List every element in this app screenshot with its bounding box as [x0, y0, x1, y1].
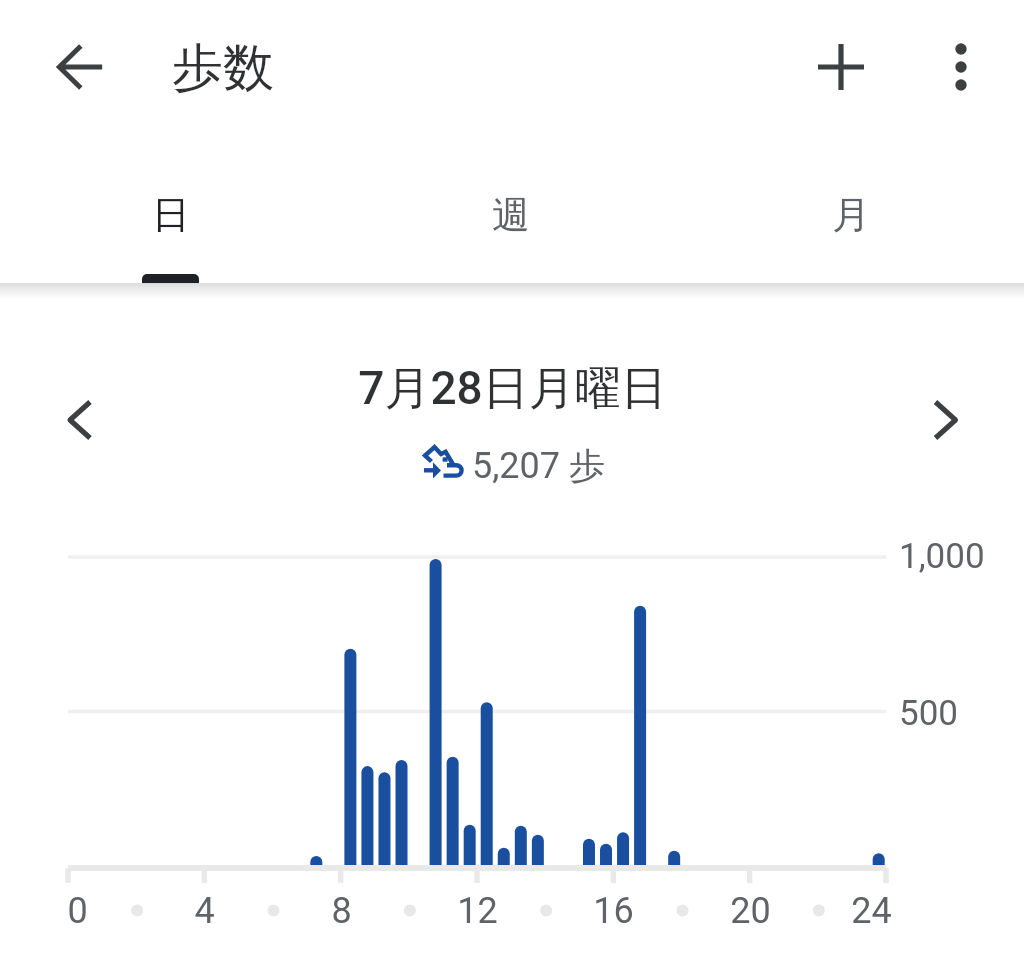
- staticText: 4: [194, 890, 215, 932]
- staticText: 5,207 歩: [472, 443, 605, 488]
- staticText: 24: [851, 890, 892, 932]
- button[interactable]: Back: [32, 19, 128, 115]
- button[interactable]: Add: [793, 19, 889, 115]
- staticText: 12: [457, 890, 498, 932]
- button[interactable]: Previous day: [30, 372, 126, 468]
- button[interactable]: 日: [0, 143, 341, 284]
- button[interactable]: 週: [341, 143, 682, 284]
- staticText: 月: [832, 191, 870, 239]
- staticText: 20: [730, 890, 771, 932]
- staticText: 16: [593, 890, 634, 932]
- button[interactable]: More options: [913, 19, 1009, 115]
- staticText: 500: [899, 693, 959, 734]
- staticText: 8: [331, 890, 352, 932]
- staticText: 1,000: [899, 536, 985, 577]
- staticText: 週: [492, 191, 530, 239]
- staticText: 7月28日月曜日: [358, 360, 667, 418]
- button[interactable]: 月: [683, 143, 1024, 284]
- staticText: 日: [152, 191, 190, 239]
- staticText: 0: [67, 890, 88, 932]
- button[interactable]: Next day: [897, 372, 993, 468]
- staticText: 歩数: [172, 36, 274, 100]
